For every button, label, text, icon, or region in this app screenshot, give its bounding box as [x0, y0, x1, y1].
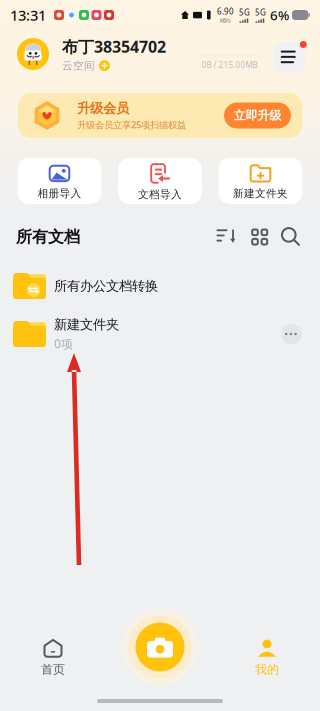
- staticText: 所有文档: [16, 227, 80, 247]
- button[interactable]: 新建文件夹: [218, 158, 302, 204]
- staticText: 立即升级: [233, 108, 281, 123]
- staticText: 0项: [54, 336, 73, 352]
- staticText: 文档导入: [138, 188, 182, 201]
- staticText: 升级会员: [77, 100, 129, 116]
- staticText: 首页: [41, 662, 65, 677]
- staticText: 新建文件夹: [233, 187, 288, 200]
- button[interactable]: 首页: [0, 632, 106, 684]
- staticText: 升级会员立享25项扫描权益: [77, 118, 186, 131]
- staticText: 云空间: [62, 59, 95, 72]
- button[interactable]: 网格视图: [244, 222, 276, 252]
- staticText: 布丁38354702: [62, 36, 166, 57]
- staticText: KB/s: [220, 17, 231, 24]
- button[interactable]: 菜单: [272, 38, 306, 70]
- button[interactable]: 排序: [208, 222, 244, 252]
- button[interactable]: 新建文件夹: [0, 310, 320, 358]
- button[interactable]: 所有办公文档转换: [0, 262, 320, 310]
- button[interactable]: 扫描: [121, 608, 199, 686]
- button[interactable]: 我的: [214, 632, 320, 684]
- staticText: 5G: [255, 7, 266, 18]
- button[interactable]: 文档导入: [118, 158, 202, 204]
- staticText: 所有办公文档转换: [54, 278, 158, 294]
- staticText: 13:31: [10, 5, 46, 25]
- button[interactable]: 相册导入: [17, 158, 101, 204]
- staticText: 6%: [270, 6, 289, 24]
- staticText: 5G: [239, 7, 250, 18]
- staticText: 相册导入: [37, 187, 81, 200]
- staticText: 新建文件夹: [54, 316, 119, 333]
- staticText: 我的: [255, 662, 279, 677]
- button[interactable]: 升级会员: [18, 93, 302, 138]
- staticText: 6.90: [217, 6, 234, 17]
- staticText: 0B / 215.00MB: [201, 59, 257, 70]
- button[interactable]: 搜索: [276, 222, 306, 252]
